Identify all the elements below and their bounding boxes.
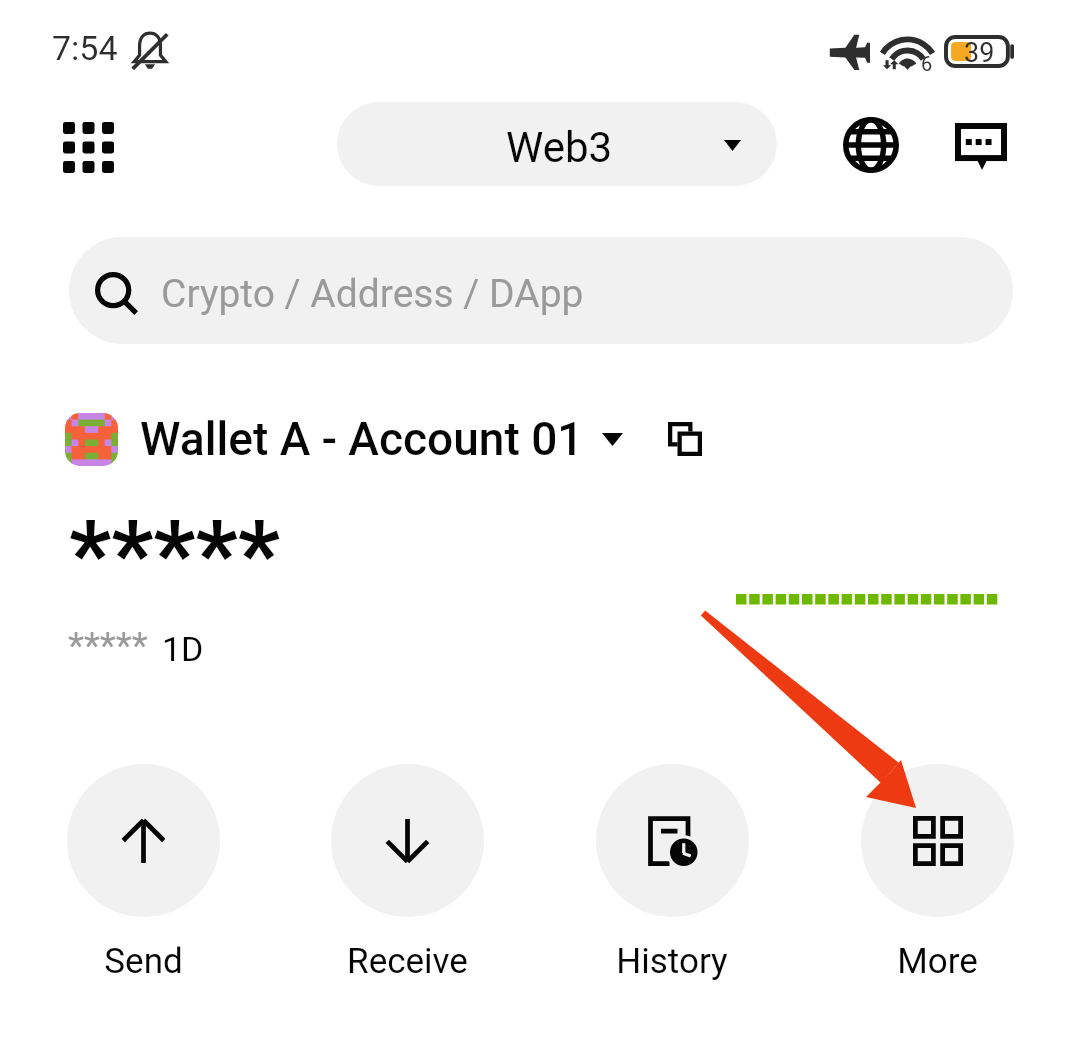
staticText: 39 xyxy=(964,37,995,66)
button[interactable]: History xyxy=(567,764,777,982)
staticText: More xyxy=(897,941,978,982)
staticText: Wallet A - Account 01 xyxy=(140,412,584,466)
staticText: Send xyxy=(104,941,183,982)
button[interactable]: Copy address xyxy=(658,412,712,466)
staticText: 6 xyxy=(921,52,933,75)
button[interactable]: Language xyxy=(838,112,904,178)
button[interactable]: Apps xyxy=(55,114,121,180)
button[interactable]: Web3 xyxy=(337,102,777,186)
staticText: ***** xyxy=(69,500,280,609)
button[interactable]: Chat xyxy=(955,123,1007,170)
button[interactable]: Crypto / Address / DApp xyxy=(69,237,1013,344)
button[interactable]: More xyxy=(832,764,1042,982)
button[interactable]: Receive xyxy=(302,764,512,982)
staticText: Crypto / Address / DApp xyxy=(161,271,584,317)
staticText: Web3 xyxy=(506,123,613,172)
staticText: ***** xyxy=(68,624,148,667)
button[interactable]: Send xyxy=(38,764,248,982)
staticText: Receive xyxy=(347,941,468,982)
staticText: 7:54 xyxy=(52,28,118,68)
staticText: History xyxy=(616,941,728,982)
staticText: 1D xyxy=(162,629,204,669)
button[interactable]: Wallet A - Account 01 xyxy=(65,411,712,467)
